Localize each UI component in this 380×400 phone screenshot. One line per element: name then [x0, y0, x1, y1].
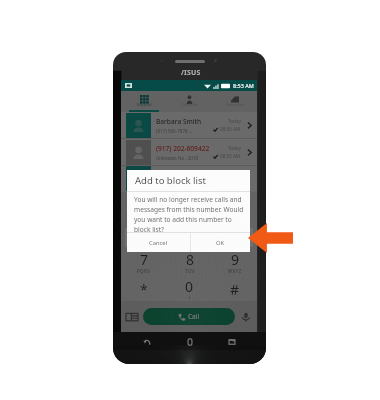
button[interactable]: Voice input — [240, 311, 252, 323]
button[interactable]: OK — [191, 233, 250, 252]
staticText: 08:53 AM — [220, 153, 241, 159]
staticText: (917) 202-609422 — [156, 144, 210, 153]
button[interactable]: Home — [181, 335, 199, 348]
staticText: TUV — [185, 268, 195, 274]
button[interactable]: Keyboard — [126, 311, 138, 323]
staticText: You will no longer receive calls and mes… — [134, 195, 244, 232]
staticText: * — [140, 280, 148, 299]
staticText: Keypad — [137, 102, 152, 108]
staticText: # — [230, 280, 240, 299]
staticText: PQRS — [137, 268, 151, 274]
staticText: 0 — [185, 277, 194, 296]
button[interactable]: Barbara Smith — [121, 112, 257, 138]
button[interactable]: 0 — [167, 274, 212, 301]
staticText: Contacts — [181, 102, 199, 108]
button[interactable]: 9 — [212, 247, 257, 274]
staticText: Unknown No . 2019 — [156, 155, 199, 161]
staticText: 8 — [186, 250, 195, 269]
button[interactable]: Keypad — [121, 91, 167, 112]
staticText: + — [188, 295, 191, 301]
button[interactable]: * — [121, 274, 167, 301]
staticText: (917) 566-7878 ... — [156, 128, 193, 134]
other: Pointer — [248, 223, 293, 253]
button[interactable]: Cancel — [127, 233, 190, 252]
staticText: 7 — [140, 250, 149, 269]
button[interactable]: Call — [143, 308, 235, 325]
button[interactable]: Favorites — [212, 91, 257, 112]
staticText: Favorites — [226, 102, 244, 108]
staticText: Add to block list — [135, 174, 206, 187]
button[interactable]: Recent apps — [223, 335, 241, 348]
staticText: Today — [228, 118, 241, 124]
staticText: 8:53 AM — [233, 82, 254, 89]
button[interactable]: # — [212, 274, 257, 301]
staticText: Call — [188, 312, 200, 321]
button[interactable]: Back — [138, 335, 156, 348]
staticText: 08:53 AM — [220, 126, 241, 132]
staticText: WXYZ — [228, 268, 242, 274]
staticText: 9 — [231, 250, 240, 269]
staticText: OK — [216, 239, 225, 247]
button[interactable]: Contacts — [167, 91, 212, 112]
button[interactable]: 7 — [121, 247, 167, 274]
button[interactable]: 8 — [167, 247, 212, 274]
staticText: /ISUS — [181, 68, 201, 78]
staticText: Today — [228, 145, 241, 151]
staticText: Barbara Smith — [156, 117, 202, 126]
staticText: Cancel — [149, 239, 168, 247]
button[interactable]: (917) 202-609422 — [121, 139, 257, 165]
